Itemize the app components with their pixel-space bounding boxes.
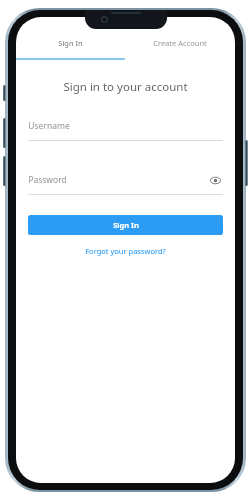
button[interactable]: Show password <box>207 172 223 188</box>
button[interactable]: Sign In <box>28 215 223 235</box>
button[interactable]: Password <box>28 172 223 195</box>
staticText: Forgot your password? <box>85 246 166 256</box>
staticText: Password <box>28 174 67 186</box>
button[interactable]: Forgot your password? <box>28 246 223 256</box>
staticText: Sign In <box>58 38 83 48</box>
staticText: Sign in to your account <box>63 79 188 95</box>
staticText: Username <box>28 120 70 132</box>
button[interactable]: Username <box>28 118 223 141</box>
button[interactable]: Create Account <box>125 38 235 58</box>
staticText: Create Account <box>153 38 207 48</box>
staticText: Sign In <box>113 220 139 230</box>
button[interactable]: Sign In <box>16 38 125 58</box>
